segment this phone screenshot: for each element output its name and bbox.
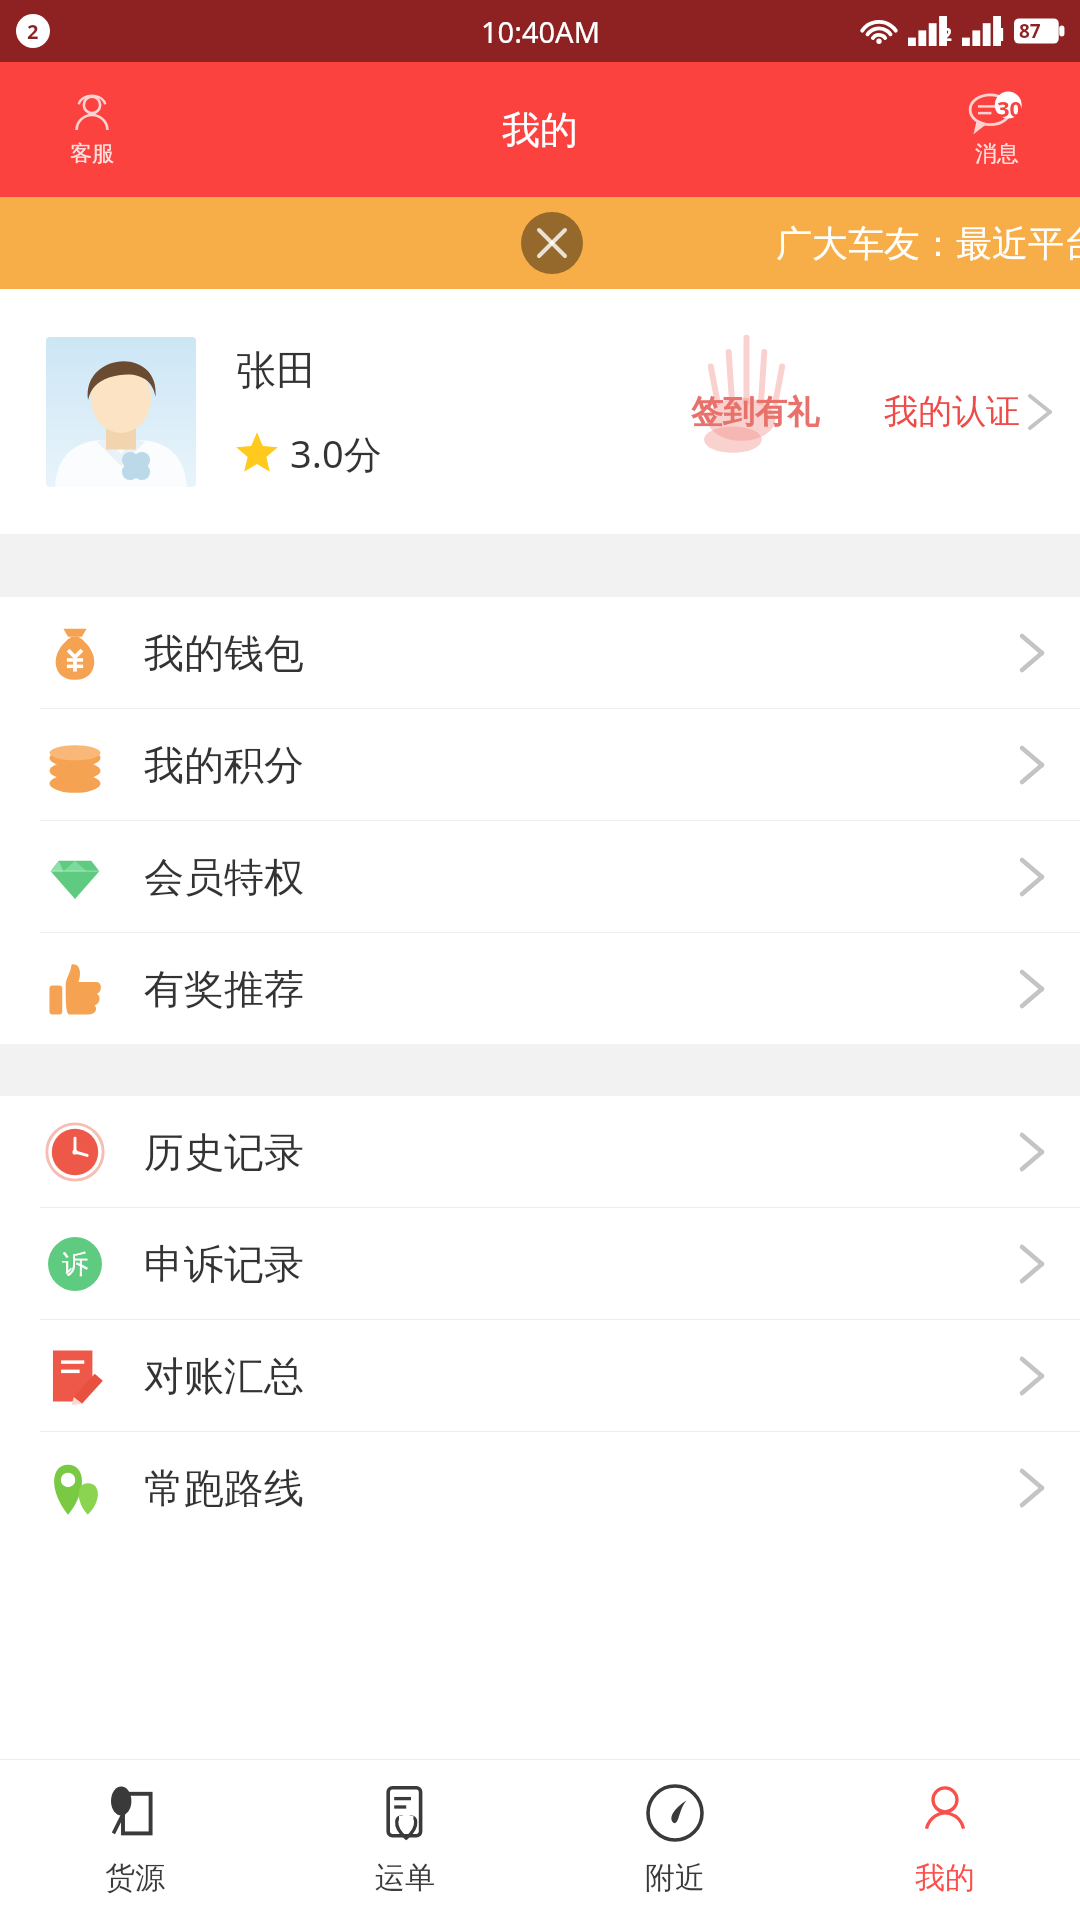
staticText: 2 [27, 18, 39, 45]
staticText: 我的认证 [884, 390, 1020, 433]
button[interactable]: 常跑路线 [0, 1432, 1080, 1543]
button[interactable]: 我的积分 [0, 709, 1080, 820]
staticText: 87 [1019, 18, 1041, 44]
button[interactable]: 我的认证 [884, 390, 1050, 433]
staticText: 10:40AM [481, 12, 600, 51]
staticText: 历史记录 [144, 1127, 304, 1177]
staticText: 会员特权 [144, 852, 304, 902]
staticText: 客服 [70, 140, 114, 168]
button[interactable]: 客服 [68, 92, 116, 168]
staticText: 对账汇总 [144, 1351, 304, 1401]
staticText: 1 [996, 23, 1006, 46]
button[interactable]: 关闭 [521, 212, 583, 274]
staticText: 张田 [236, 345, 316, 395]
staticText: 常跑路线 [144, 1463, 304, 1513]
button[interactable]: 签到有礼 [670, 352, 840, 472]
staticText: 30 [997, 93, 1023, 123]
staticText: 我的 [915, 1859, 975, 1897]
button[interactable]: 运单 [270, 1760, 540, 1920]
button[interactable]: 头像 [46, 337, 196, 487]
button[interactable]: 会员特权 [0, 821, 1080, 932]
staticText: 附近 [645, 1859, 705, 1897]
button[interactable]: 诉 [0, 1208, 1080, 1319]
staticText: 我的积分 [144, 740, 304, 790]
button[interactable]: 有奖推荐 [0, 933, 1080, 1044]
button[interactable]: 货源 [0, 1760, 270, 1920]
button[interactable]: 历史记录 [0, 1096, 1080, 1207]
button[interactable]: 对账汇总 [0, 1320, 1080, 1431]
button[interactable]: 我的钱包 [0, 597, 1080, 708]
staticText: 广大车友：最近平台 [776, 221, 1080, 266]
staticText: 运单 [375, 1859, 435, 1897]
staticText: 签到有礼 [691, 392, 819, 432]
staticText: 3.0分 [290, 427, 382, 479]
staticText: 申诉记录 [144, 1239, 304, 1289]
staticText: 2 [942, 23, 952, 46]
staticText: 有奖推荐 [144, 964, 304, 1014]
button[interactable]: 我的 [810, 1760, 1080, 1920]
staticText: 货源 [105, 1859, 165, 1897]
button[interactable]: 附近 [540, 1760, 810, 1920]
staticText: 消息 [975, 140, 1019, 168]
staticText: 我的 [502, 106, 578, 154]
button[interactable]: 消息 [969, 92, 1025, 168]
staticText: 诉 [62, 1248, 88, 1281]
staticText: 我的钱包 [144, 628, 304, 678]
